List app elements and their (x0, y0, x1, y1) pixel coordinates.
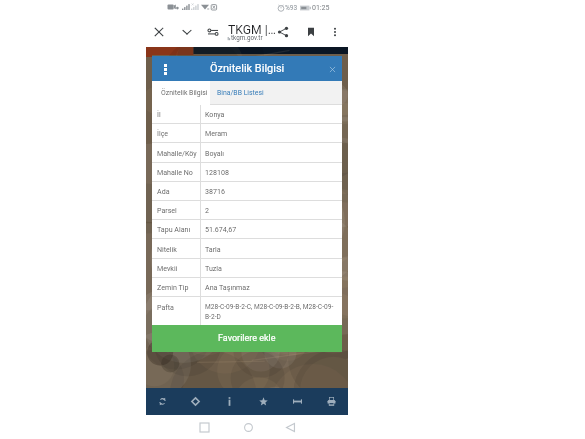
button[interactable]: Bina/BB Listesi (210, 81, 290, 105)
staticText: Ada (157, 187, 170, 195)
staticText: Öznitelik Bilgisi (210, 62, 285, 75)
button[interactable]: Share (272, 18, 294, 45)
staticText: Nitelik (157, 245, 177, 253)
staticText: Tuzla (205, 264, 222, 272)
button[interactable]: Expand (176, 18, 198, 45)
staticText: Boyalı (205, 149, 225, 157)
staticText: %93 (285, 4, 298, 12)
staticText: 01:25 (312, 4, 330, 12)
button[interactable]: Info (212, 388, 246, 415)
staticText: Ana Taşınmaz (205, 283, 250, 291)
staticText: İlçe (157, 129, 169, 137)
staticText: 128108 (205, 168, 229, 176)
button[interactable]: Recents (194, 417, 214, 437)
button[interactable]: Favorilere ekle (152, 325, 342, 352)
staticText: Tarla (205, 245, 221, 253)
button[interactable]: More options (324, 18, 346, 45)
button[interactable]: Close dialog (324, 61, 340, 77)
staticText: Favorilere ekle (218, 333, 276, 344)
button[interactable]: Print (314, 388, 348, 415)
button[interactable]: Menu (156, 60, 174, 78)
staticText: 51.674,67 (205, 225, 237, 233)
staticText: Tapu Alanı (157, 225, 191, 233)
staticText: Öznitelik Bilgisi (161, 89, 208, 97)
button[interactable]: Öznitelik Bilgisi (152, 81, 210, 105)
staticText: Mahalle No (157, 168, 193, 176)
staticText: Pafta (157, 303, 174, 311)
button[interactable]: Back (280, 417, 300, 437)
staticText: İl (157, 110, 161, 118)
staticText: Mahalle/Köy (157, 149, 197, 157)
staticText: Bina/BB Listesi (217, 89, 264, 97)
button[interactable]: Measure (280, 388, 314, 415)
staticText: Zemin Tip (157, 283, 189, 291)
staticText: Meram (205, 129, 228, 137)
button[interactable]: Close (148, 18, 170, 45)
staticText: tkgm.gov.tr (231, 34, 263, 41)
button[interactable]: Home (238, 417, 258, 437)
button[interactable]: Locate me (179, 388, 212, 415)
staticText: Konya (205, 110, 225, 118)
staticText: 38716 (205, 187, 225, 195)
staticText: 2 (205, 206, 209, 214)
staticText: M28-C-09-B-2-C, M28-C-09-B-2-B, M28-C-09… (205, 303, 339, 321)
button[interactable]: Refresh (146, 388, 179, 415)
staticText: Parsel (157, 206, 177, 214)
button[interactable]: Favorites (246, 388, 280, 415)
button[interactable]: Bookmark (300, 18, 322, 45)
button[interactable]: Page settings (202, 18, 224, 45)
staticText: Mevkii (157, 264, 178, 272)
staticText: TKGM |… (228, 23, 276, 37)
